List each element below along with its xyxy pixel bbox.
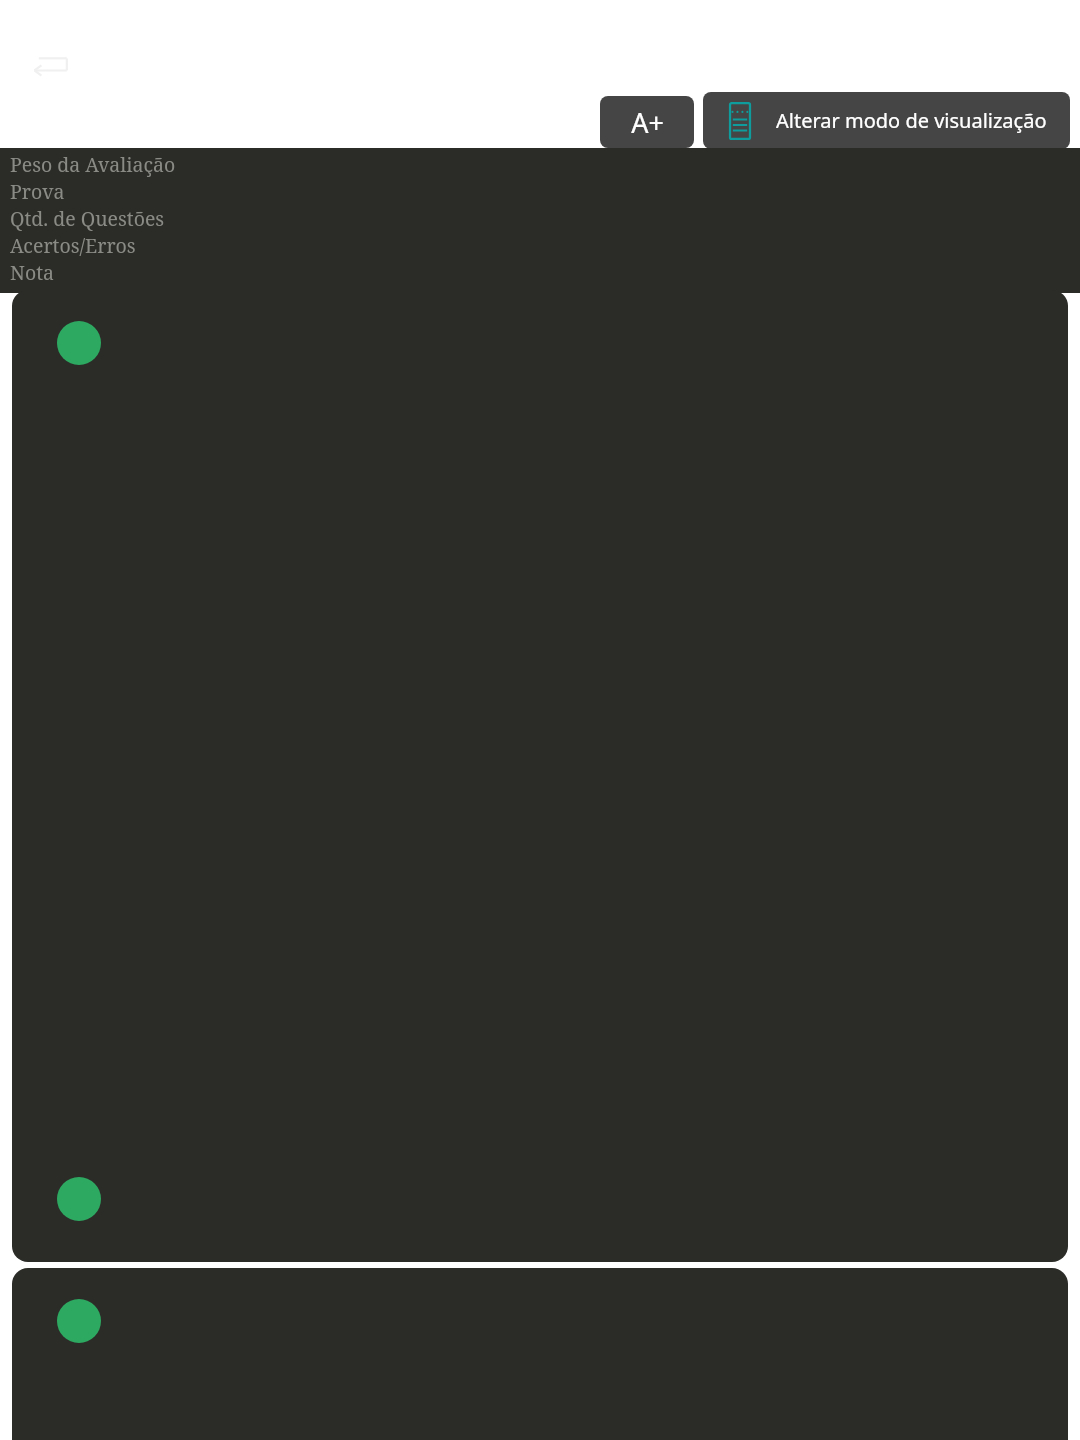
- button[interactable]: Voltar: [30, 50, 70, 82]
- staticText: Alterar modo de visualização: [776, 107, 1047, 134]
- staticText: Prova: [10, 178, 65, 205]
- staticText: A+: [631, 104, 664, 141]
- staticText: Acertos/Erros: [10, 232, 136, 259]
- button[interactable]: Alterar modo de visualização: [703, 92, 1070, 149]
- button[interactable]: [12, 290, 1068, 1262]
- staticText: Qtd. de Questões: [10, 205, 165, 232]
- button[interactable]: A+: [600, 96, 694, 148]
- staticText: Nota: [10, 259, 54, 286]
- button[interactable]: [12, 1268, 1068, 1440]
- staticText: Peso da Avaliação: [10, 151, 176, 178]
